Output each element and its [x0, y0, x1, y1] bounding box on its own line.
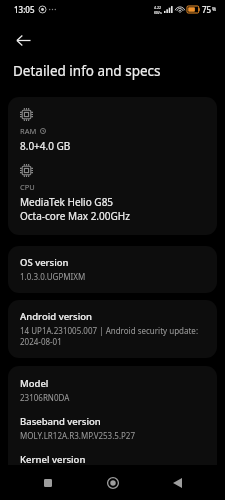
- button[interactable]: Back: [161, 467, 193, 499]
- staticText: 4.22: [154, 5, 162, 10]
- staticText: Kernel version: [20, 453, 86, 466]
- staticText: Detailed info and specs: [13, 62, 161, 80]
- button[interactable]: Back: [9, 26, 37, 54]
- staticText: Baseband version: [20, 415, 101, 428]
- staticText: Android version: [20, 310, 93, 323]
- staticText: 75: [202, 4, 212, 15]
- staticText: 23106RN0DA: [20, 392, 70, 403]
- button[interactable]: Recents: [32, 467, 64, 499]
- staticText: MediaTek Helio G85: [20, 195, 114, 209]
- staticText: 1.0.3.0.UGPMIXM: [20, 271, 86, 282]
- staticText: KB/s: [154, 10, 162, 15]
- staticText: CPU: [20, 182, 35, 192]
- staticText: 4.19.191-g7c18269e227a: [20, 468, 114, 479]
- staticText: 13:05: [14, 4, 35, 15]
- staticText: RAM: [20, 126, 37, 136]
- button[interactable]: Home: [97, 467, 129, 499]
- button[interactable]: Model: [8, 366, 217, 491]
- staticText: 8.0+4.0 GB: [20, 139, 71, 153]
- staticText: Model: [20, 377, 49, 390]
- staticText: MOLY.LR12A.R3.MP.V253.5.P27: [20, 430, 136, 441]
- button[interactable]: RAM: [8, 97, 217, 235]
- staticText: 2024-08-01: [20, 336, 62, 347]
- staticText: OS version: [20, 256, 69, 269]
- staticText: %: [212, 6, 217, 13]
- button[interactable]: OS version: [8, 246, 217, 293]
- staticText: Octa-core Max 2.00GHz: [20, 209, 130, 223]
- button[interactable]: Android version: [8, 300, 217, 358]
- staticText: 14 UP1A.231005.007 | Android security up…: [20, 325, 199, 336]
